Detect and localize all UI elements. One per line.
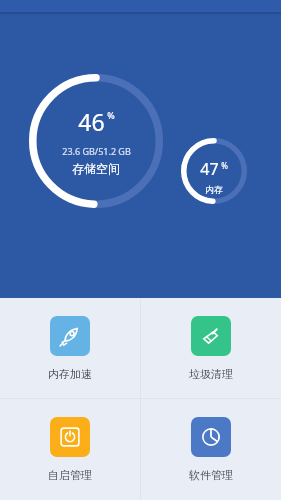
button[interactable]: 47 [181,138,247,204]
staticText: 软件管理 [189,468,233,482]
staticText: 垃圾清理 [189,367,233,381]
button[interactable]: 垃圾清理 [141,298,281,398]
staticText: 内存加速 [48,367,92,381]
button[interactable]: 自启管理 [0,399,140,500]
staticText: 内存 [205,184,223,195]
staticText: 46 [78,106,105,137]
button[interactable]: 软件管理 [141,399,281,500]
staticText: % [107,109,115,121]
staticText: 23.6 GB/51.2 GB [62,145,131,157]
button[interactable]: 内存加速 [0,298,140,398]
staticText: 存储空间 [72,161,120,176]
staticText: 47 [200,158,219,180]
button[interactable]: 46 [29,74,163,208]
staticText: 自启管理 [48,468,92,482]
staticText: % [221,160,228,171]
